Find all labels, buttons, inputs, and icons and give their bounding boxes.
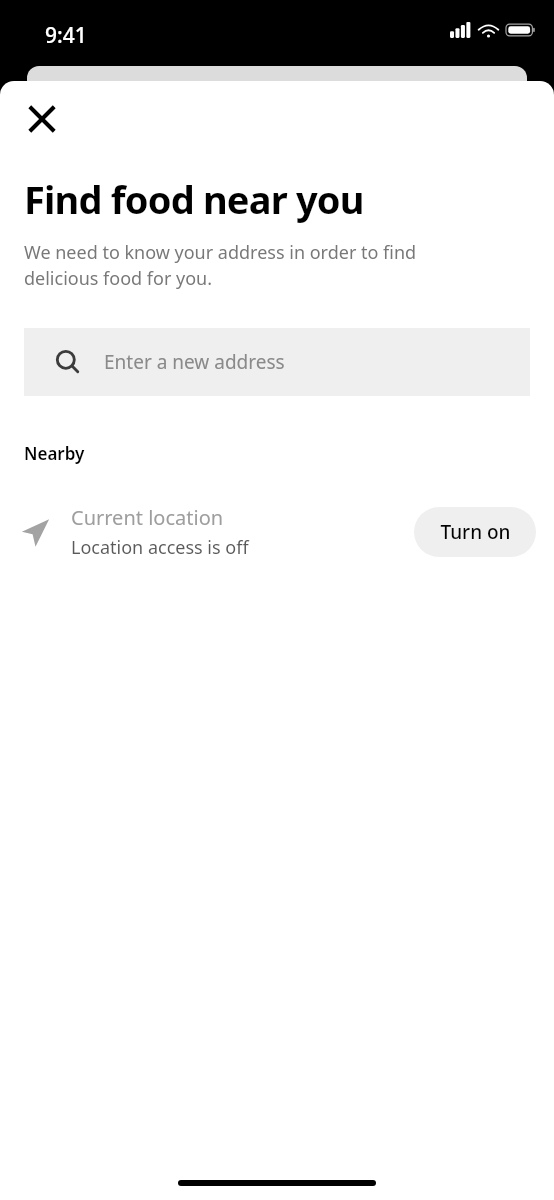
staticText: Current location [71,504,224,531]
button[interactable]: Enter a new address [24,328,530,396]
button[interactable]: Close [20,97,64,141]
button[interactable]: Current location [0,495,554,569]
button[interactable]: Turn on [414,507,536,557]
staticText: Find food near you [24,173,364,225]
staticText: We need to know your address in order to… [24,240,492,291]
staticText: Nearby [24,442,85,465]
staticText: Turn on [440,519,511,545]
staticText: Location access is off [71,535,249,560]
staticText: 9:41 [45,21,87,50]
staticText: Enter a new address [104,349,285,375]
